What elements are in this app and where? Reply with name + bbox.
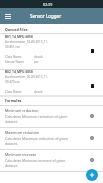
button[interactable]: Delete [86, 45, 98, 57]
staticText: Sensor Logger [30, 13, 62, 19]
staticText: Sensor Name [5, 60, 24, 64]
staticText: Queued Files [5, 27, 28, 32]
staticText: Calculates Minimum reduction of given da… [5, 114, 77, 124]
staticText: Class Name [5, 90, 22, 94]
staticText: Calculates Maximum reduction of given da… [5, 136, 77, 146]
staticText: Maximum reduction [5, 130, 40, 135]
button[interactable]: Maximum reduction [0, 127, 103, 149]
staticText: 02:39 [43, 2, 53, 7]
staticText: Calculates Minimum increase of given dat… [5, 158, 77, 168]
staticText: Class Name [5, 55, 22, 59]
button[interactable]: Minimum reduction [0, 105, 103, 127]
staticText: dosuk [34, 90, 43, 94]
staticText: Accelerometer_02-89-3013_11-39-470.csv [5, 75, 49, 84]
staticText: Minimum reduction [5, 108, 39, 113]
staticText: Formulas [5, 98, 22, 103]
staticText: B01_14_MPU-6058 [5, 35, 33, 39]
button[interactable]: Menu [0, 8, 16, 24]
staticText: acc [34, 60, 39, 64]
staticText: B02_14_MPU-6058 [5, 70, 33, 74]
button[interactable]: Add [86, 169, 98, 181]
staticText: dosuk [34, 55, 43, 59]
button[interactable]: Minimum increase [0, 149, 103, 171]
button[interactable]: B01_14_MPU-6058 [0, 33, 103, 68]
button[interactable]: Delete [86, 80, 98, 92]
staticText: Minimum increase [5, 152, 37, 157]
button[interactable]: B02_14_MPU-6058 [0, 68, 103, 95]
staticText: Accelerometer_02-89-3013_11-39-851.csv [5, 40, 49, 49]
